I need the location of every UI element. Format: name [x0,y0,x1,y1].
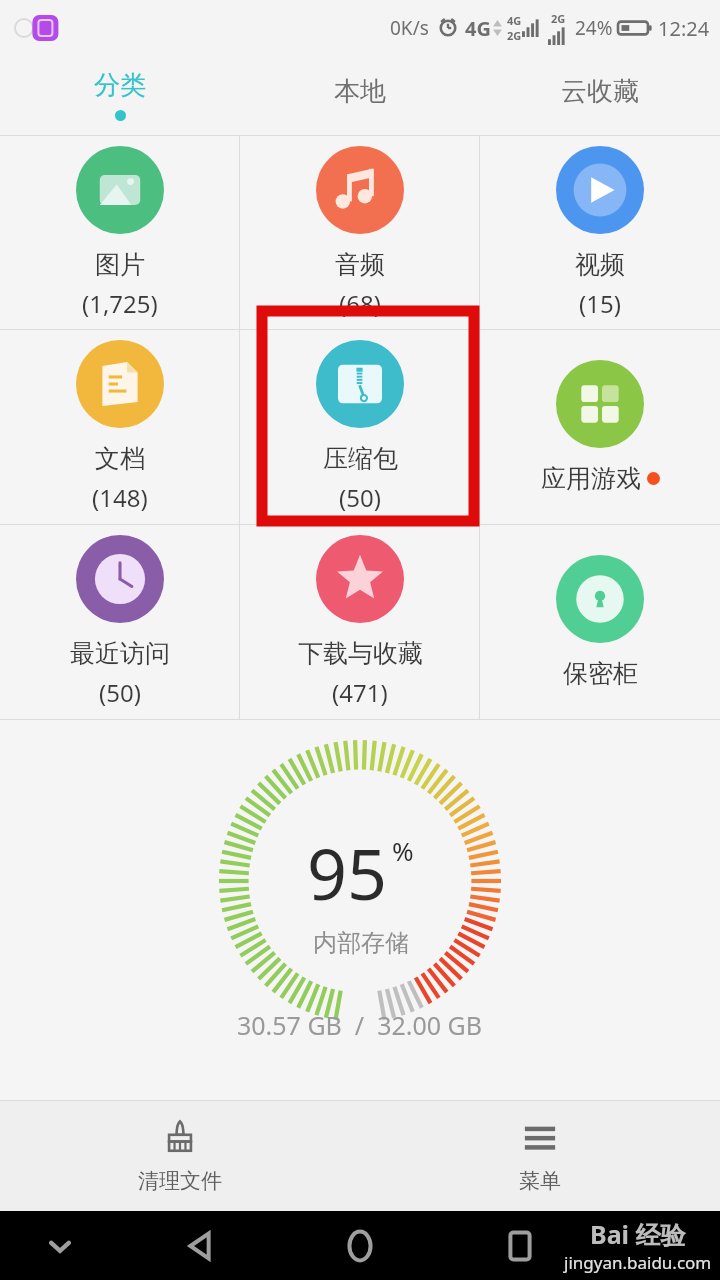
staticText: (471) [332,676,388,709]
staticText: 本地 [334,75,386,108]
staticText: 分类 [94,69,146,102]
staticText: 12:24 [658,15,710,42]
staticText: (50) [99,676,141,709]
button[interactable]: 视频 [480,136,720,329]
button[interactable]: 保密柜 [480,525,720,719]
button[interactable]: Recents [496,1222,544,1270]
button[interactable]: 下载与收藏 [240,525,480,719]
button[interactable]: 压缩包 [240,330,480,524]
staticText: 云收藏 [561,75,639,108]
staticText: 2G [507,28,522,43]
button[interactable]: 最近访问 [0,525,240,719]
button[interactable]: 菜单 [360,1101,720,1211]
staticText: 文档 [95,443,145,474]
button[interactable]: 本地 [240,55,480,135]
staticText: 4G [507,13,522,28]
staticText: Bai 经验 [590,1217,686,1251]
other: 清理文件 [159,1118,201,1160]
button[interactable]: 图片 [0,136,240,329]
staticText: 0K/s [390,15,429,41]
staticText: 音频 [335,249,385,280]
staticText: (50) [339,481,381,514]
staticText: (68) [339,287,381,320]
button[interactable]: 应用游戏 [480,330,720,524]
button[interactable]: 文档 [0,330,240,524]
staticText: jingyan.baidu.com [564,1251,712,1274]
button[interactable]: Back [176,1222,224,1270]
button[interactable]: Hide [40,1226,80,1266]
staticText: 24% [575,15,613,41]
staticText: 保密柜 [563,658,638,689]
staticText: 视频 [575,249,625,280]
button[interactable]: 分类 [0,55,240,135]
staticText: 应用游戏 [541,463,641,494]
staticText: 最近访问 [70,638,170,669]
staticText: 压缩包 [323,443,398,474]
staticText: 30.57 GB / 32.00 GB [237,1008,483,1042]
other: 菜单 [519,1118,561,1160]
staticText: 下载与收藏 [298,638,423,669]
staticText: 2G [551,11,566,26]
staticText: 内部存储 [313,928,409,958]
staticText: 菜单 [519,1168,561,1194]
staticText: % [392,833,414,868]
staticText: 95 [307,825,388,920]
button[interactable]: 音频 [240,136,480,329]
staticText: 清理文件 [138,1168,222,1194]
button[interactable]: 清理文件 [0,1101,360,1211]
staticText: (1,725) [82,287,158,320]
staticText: 4G [465,15,491,42]
button[interactable]: Home [336,1222,384,1270]
staticText: 图片 [95,249,145,280]
button[interactable]: 云收藏 [480,55,720,135]
staticText: (148) [92,481,148,514]
staticText: (15) [579,287,621,320]
